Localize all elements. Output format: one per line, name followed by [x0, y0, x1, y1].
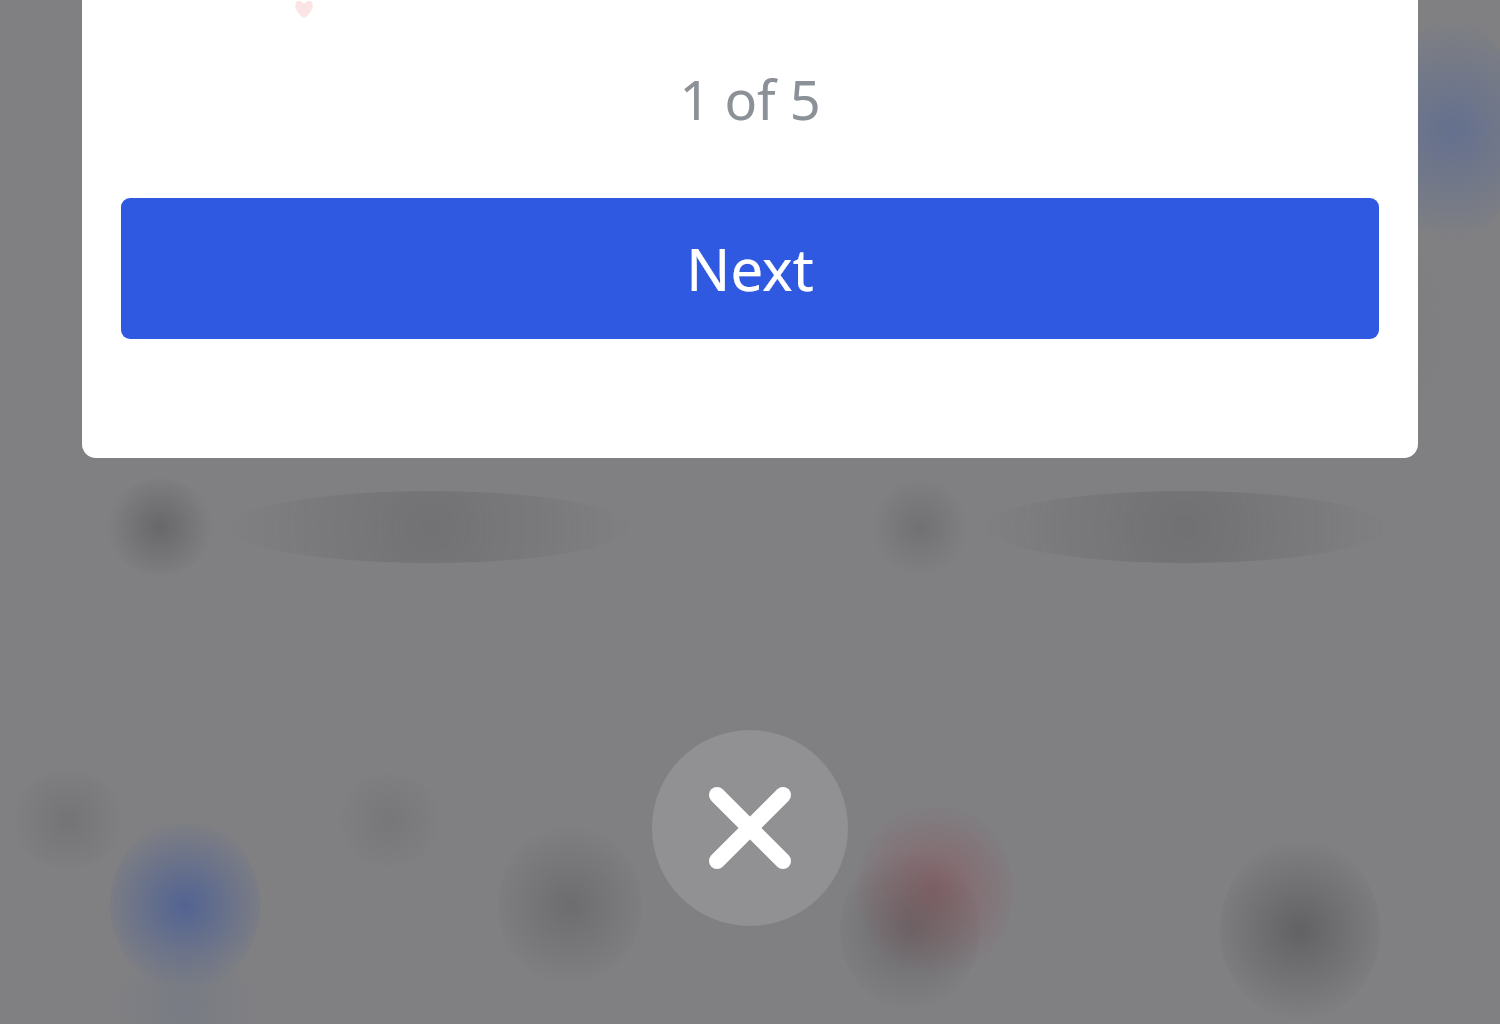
- button[interactable]: Close: [652, 730, 848, 926]
- staticText: Next: [686, 229, 814, 308]
- staticText: 1 of 5: [679, 62, 821, 136]
- button[interactable]: Next: [121, 198, 1379, 339]
